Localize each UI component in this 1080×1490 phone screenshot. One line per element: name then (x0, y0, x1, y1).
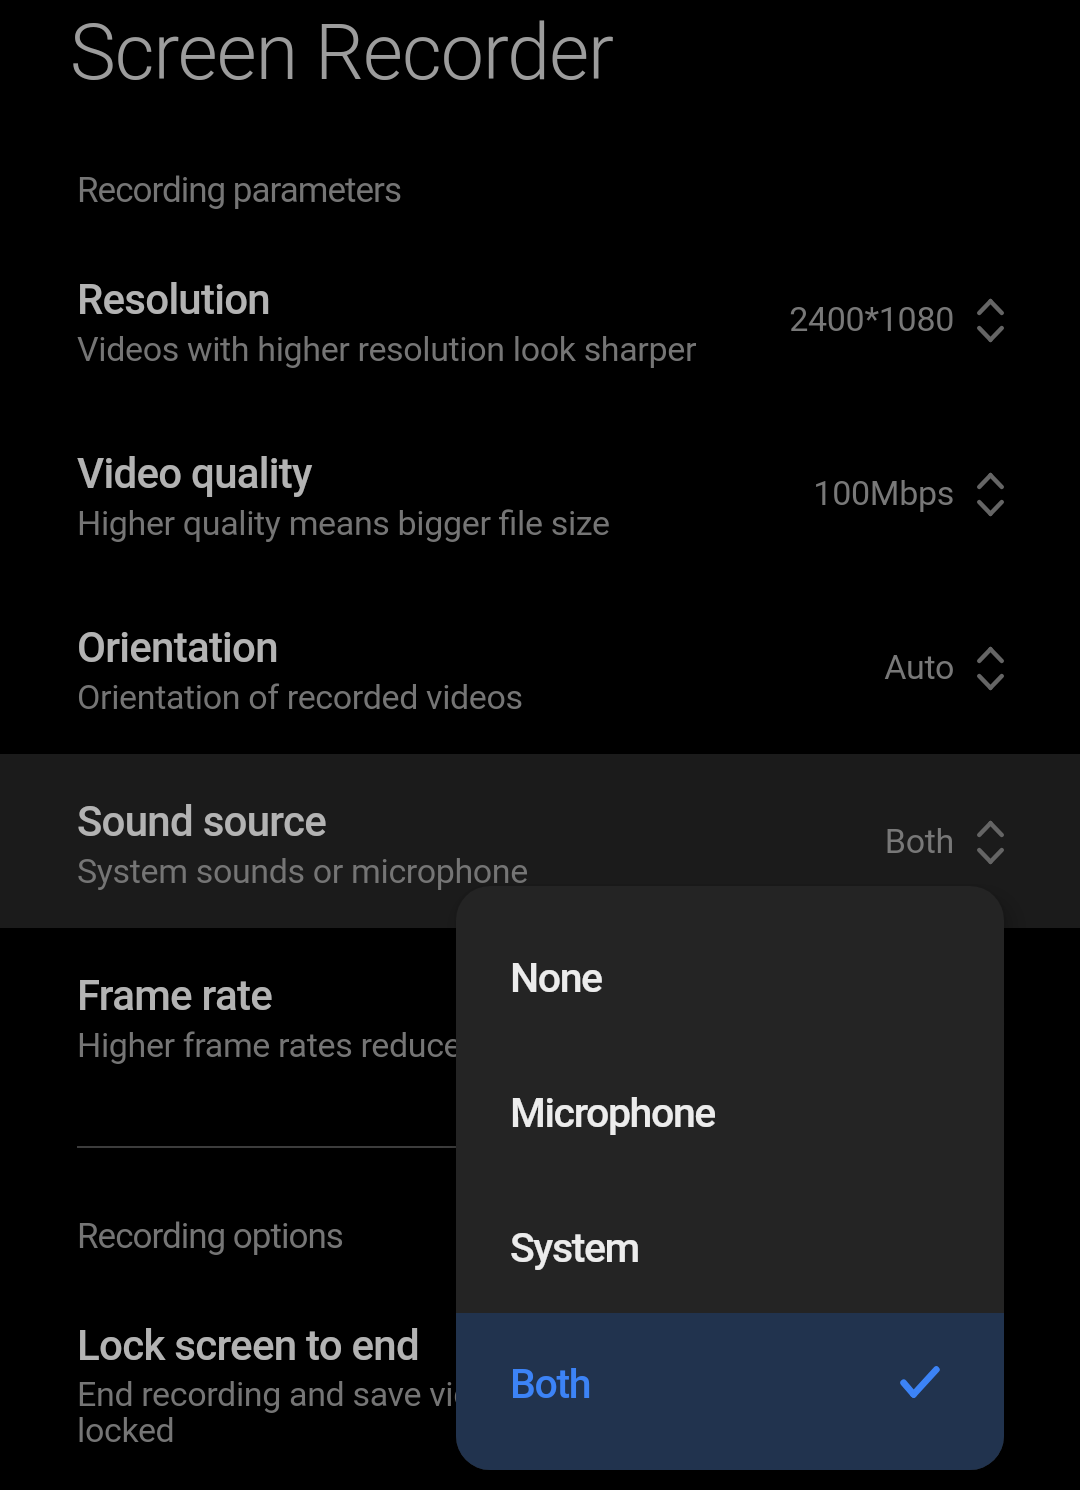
button[interactable]: System (456, 1180, 1004, 1315)
staticText: End recording and save video when screen… (77, 1374, 777, 1451)
other: Change value (977, 647, 1004, 690)
staticText: 2400*1080 (300, 299, 954, 339)
button[interactable]: Frame rate (0, 928, 1080, 1102)
button[interactable]: Sound source (0, 754, 1080, 928)
staticText: Recording options (77, 1216, 343, 1257)
staticText: Orientation (77, 623, 278, 672)
staticText: Auto (300, 647, 954, 687)
staticText: Frame rate (77, 971, 272, 1020)
staticText: Orientation of recorded videos (77, 677, 523, 717)
other: Change value (977, 473, 1004, 516)
other: Selected (897, 1363, 943, 1401)
button[interactable]: Video quality (0, 406, 1080, 580)
staticText: System (510, 1224, 639, 1272)
staticText: Higher quality means bigger file size (77, 503, 610, 543)
other: Change value (977, 821, 1004, 864)
staticText: Both (510, 1360, 591, 1408)
staticText: Higher frame rates reduce lag (77, 1025, 515, 1065)
staticText: 100Mbps (300, 473, 954, 513)
staticText: Lock screen to end (77, 1321, 419, 1370)
staticText: Both (300, 821, 954, 861)
staticText: Video quality (77, 449, 312, 498)
staticText: Resolution (77, 275, 270, 324)
staticText: 60fps (300, 995, 954, 1035)
staticText: Videos with higher resolution look sharp… (77, 329, 697, 369)
button[interactable]: Both (456, 1313, 1004, 1470)
button[interactable]: Resolution (0, 232, 1080, 406)
button[interactable]: Lock screen to end (0, 1300, 1080, 1490)
button[interactable]: None (456, 910, 1004, 1045)
staticText: Recording parameters (77, 170, 401, 211)
staticText: Screen Recorder (70, 8, 614, 98)
button[interactable]: Orientation (0, 580, 1080, 754)
staticText: Microphone (510, 1089, 715, 1137)
button[interactable]: Microphone (456, 1045, 1004, 1180)
staticText: None (510, 954, 602, 1002)
other: Change value (977, 299, 1004, 342)
staticText: System sounds or microphone (77, 851, 528, 891)
staticText: Sound source (77, 797, 327, 846)
